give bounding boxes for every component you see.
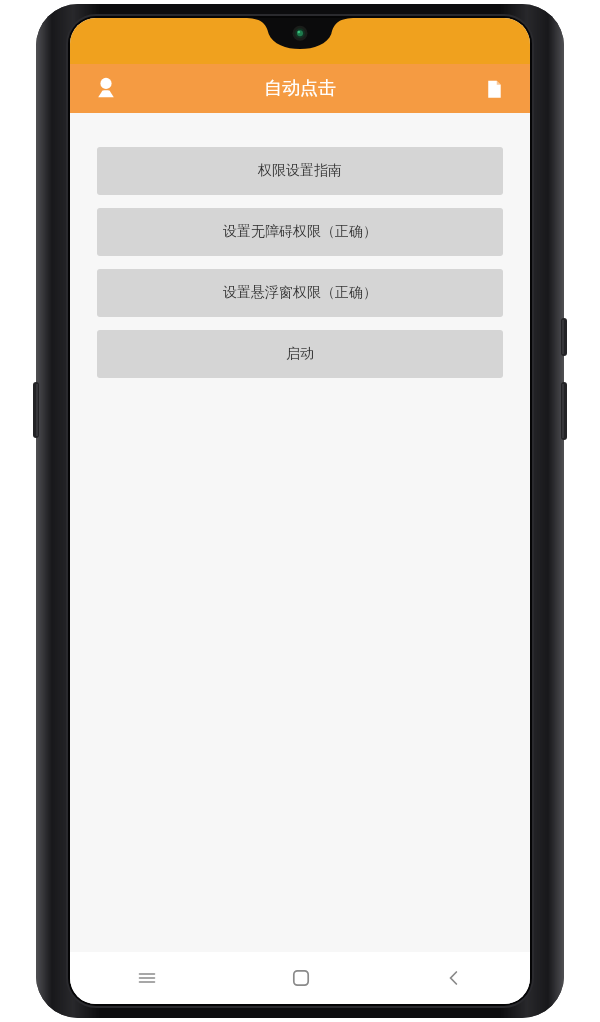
- button[interactable]: 权限设置指南: [97, 147, 503, 195]
- button[interactable]: 设置悬浮窗权限（正确）: [97, 269, 503, 317]
- button[interactable]: 启动: [97, 330, 503, 378]
- staticText: 启动: [286, 345, 314, 363]
- button[interactable]: Back: [377, 952, 530, 1004]
- staticText: 权限设置指南: [258, 162, 342, 180]
- button[interactable]: Account: [86, 69, 126, 109]
- staticText: 设置悬浮窗权限（正确）: [223, 284, 377, 302]
- button[interactable]: Home: [224, 952, 377, 1004]
- staticText: 自动点击: [264, 77, 336, 100]
- button[interactable]: Recent apps: [70, 952, 224, 1004]
- button[interactable]: Document: [474, 69, 514, 109]
- button[interactable]: 设置无障碍权限（正确）: [97, 208, 503, 256]
- staticText: 设置无障碍权限（正确）: [223, 223, 377, 241]
